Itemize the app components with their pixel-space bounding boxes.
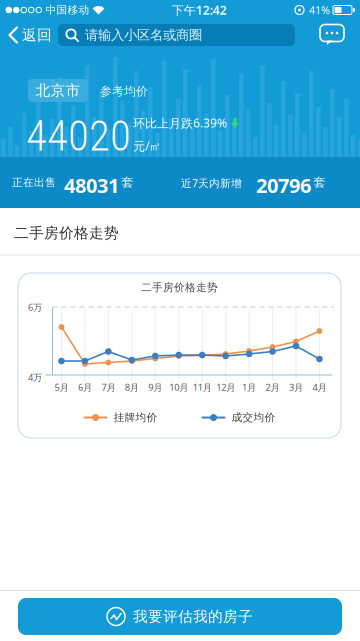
staticText: 二手房价格走势 — [141, 281, 218, 294]
staticText: 5月 — [54, 381, 68, 393]
staticText: 6万 — [28, 301, 42, 313]
staticText: 参考均价 — [100, 84, 148, 99]
staticText: 挂牌均价 — [113, 411, 157, 424]
staticText: 返回 — [22, 26, 52, 44]
staticText: 8月 — [125, 381, 139, 393]
staticText: 11月 — [193, 381, 212, 393]
button[interactable]: 消息 — [320, 24, 360, 45]
staticText: 12月 — [216, 381, 235, 393]
staticText: 3月 — [289, 381, 303, 393]
staticText: 1月 — [242, 381, 256, 393]
staticText: 9月 — [148, 381, 162, 393]
staticText: 44020 — [26, 111, 131, 161]
button[interactable]: 我要评估我的房子 — [18, 598, 342, 635]
staticText: 2月 — [265, 381, 279, 393]
staticText: 41% — [309, 3, 330, 17]
staticText: 10月 — [169, 381, 188, 393]
staticText: 套 — [121, 175, 133, 190]
staticText: 我要评估我的房子 — [133, 607, 253, 625]
staticText: 中国移动 — [45, 3, 89, 16]
staticText: 4万 — [28, 371, 42, 383]
staticText: 请输入小区名或商圈 — [85, 27, 202, 43]
staticText: 近7天内新增 — [181, 176, 242, 190]
staticText: 20796 — [256, 172, 311, 199]
staticText: 7月 — [101, 381, 115, 393]
staticText: 成交均价 — [231, 411, 275, 424]
staticText: 二手房价格走势 — [14, 224, 119, 242]
staticText: 正在出售 — [12, 176, 56, 189]
staticText: 48031 — [64, 172, 119, 199]
staticText: 北京市 — [35, 81, 80, 99]
button[interactable]: 北京市 — [28, 79, 88, 102]
staticText: 元/㎡ — [133, 138, 161, 154]
staticText: 环比上月跌6.39% — [133, 115, 227, 131]
staticText: 套 — [313, 175, 325, 190]
button[interactable]: 返回 — [0, 26, 52, 44]
button[interactable]: 搜索 — [52, 24, 295, 46]
staticText: 4月 — [312, 381, 326, 393]
staticText: 6月 — [78, 381, 92, 393]
staticText: 下午12:42 — [172, 2, 227, 18]
